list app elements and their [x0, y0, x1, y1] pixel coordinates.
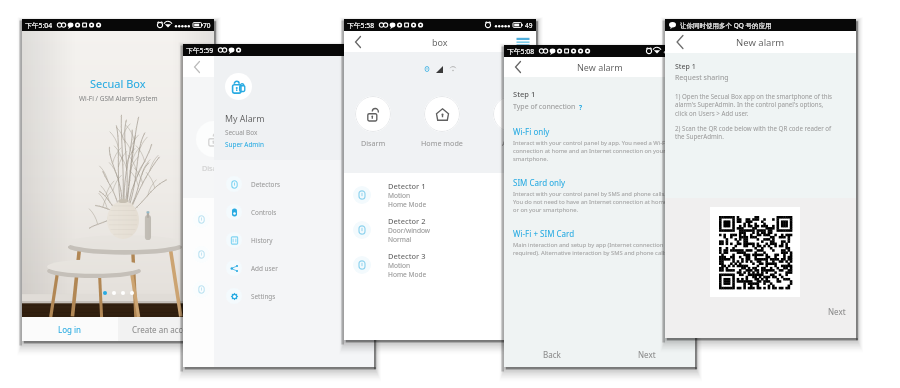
staticText: Type of connection — [513, 102, 576, 112]
button[interactable]: Back — [348, 32, 368, 52]
button[interactable]: Log in — [22, 317, 118, 341]
staticText: 下午5:59 — [186, 46, 214, 55]
staticText: My Alarm — [225, 113, 265, 125]
button[interactable]: Next — [665, 301, 856, 321]
staticText: Log in — [58, 324, 82, 335]
staticText: Request sharing — [675, 73, 729, 83]
staticText: Back — [543, 349, 561, 360]
staticText: 49 — [525, 21, 533, 30]
staticText: 下午5:58 — [347, 21, 375, 30]
staticText: 让你同时使用多个 QQ 号的应用 — [680, 21, 772, 30]
staticText: Detector 3 — [388, 251, 426, 261]
button[interactable]: Menu — [513, 32, 533, 52]
staticText: Detectors — [251, 180, 281, 189]
button[interactable]: Wi-Fi only — [504, 121, 695, 172]
button[interactable]: Detectors — [214, 170, 374, 198]
button[interactable]: Disarm — [355, 96, 391, 148]
staticText: Home Mode — [388, 200, 427, 209]
staticText: 1) Open the Secual Box app on the smartp… — [675, 92, 833, 118]
button[interactable]: Detector 1 — [344, 177, 536, 212]
staticText: Home mode — [421, 138, 463, 148]
staticText: box — [432, 36, 448, 48]
staticText: SIM Card only — [513, 177, 566, 188]
staticText: Settings — [251, 292, 276, 301]
staticText: Main interaction and setup by app (Inter… — [513, 241, 669, 257]
staticText: New alarm — [577, 61, 623, 73]
staticText: Away — [502, 138, 520, 148]
staticText: ? — [579, 103, 583, 112]
staticText: Create an account — [132, 324, 200, 335]
staticText: 70 — [203, 21, 211, 30]
staticText: New alarm — [736, 36, 785, 49]
button[interactable]: Add user — [214, 254, 374, 282]
staticText: Home Mode — [388, 270, 427, 279]
staticText: Next — [828, 306, 846, 317]
staticText: History — [251, 236, 273, 245]
staticText: Detector 2 — [388, 216, 426, 226]
button[interactable]: History — [214, 226, 374, 254]
staticText: Next — [638, 349, 656, 360]
button[interactable]: Create an account — [118, 317, 214, 341]
button[interactable]: Next — [599, 341, 695, 367]
staticText: Super Admin — [225, 140, 264, 149]
button[interactable]: SIM Card only — [504, 172, 695, 223]
staticText: Interact with your control panel by app.… — [513, 139, 667, 163]
button[interactable]: Home mode — [421, 96, 463, 148]
button[interactable]: Settings — [214, 282, 374, 310]
button[interactable]: Detector 3 — [344, 247, 536, 282]
staticText: Wi-Fi + SIM Card — [513, 228, 575, 239]
staticText: Door/window — [388, 226, 431, 235]
staticText: Motion — [388, 191, 411, 200]
staticText: Disarm — [202, 163, 227, 173]
staticText: Add user — [251, 264, 278, 273]
button[interactable]: Controls — [214, 198, 374, 226]
staticText: Step 1 — [675, 62, 696, 72]
staticText: 下午5:08 — [507, 47, 535, 56]
staticText: Step 1 — [513, 89, 536, 99]
button[interactable]: Away — [493, 96, 529, 148]
button[interactable]: Detector 2 — [344, 212, 536, 247]
button[interactable]: Back — [670, 32, 690, 52]
staticText: Wi-Fi / GSM Alarm System — [79, 94, 158, 103]
staticText: 2) Scan the QR code below with the QR co… — [675, 124, 832, 141]
staticText: Wi-Fi only — [513, 126, 550, 137]
staticText: Interact with your control panel by SMS … — [513, 190, 668, 214]
button[interactable]: Back — [504, 341, 599, 367]
staticText: Detector 1 — [388, 181, 426, 191]
staticText: Controls — [251, 208, 277, 217]
staticText: Motion — [388, 261, 411, 270]
staticText: 下午5:04 — [25, 21, 53, 30]
staticText: Disarm — [361, 138, 386, 148]
staticText: Normal — [388, 235, 412, 244]
staticText: Secual Box — [90, 76, 146, 91]
button[interactable]: Back — [508, 57, 528, 77]
staticText: Secual Box — [225, 128, 258, 137]
button[interactable]: Wi-Fi + SIM Card — [504, 223, 695, 274]
